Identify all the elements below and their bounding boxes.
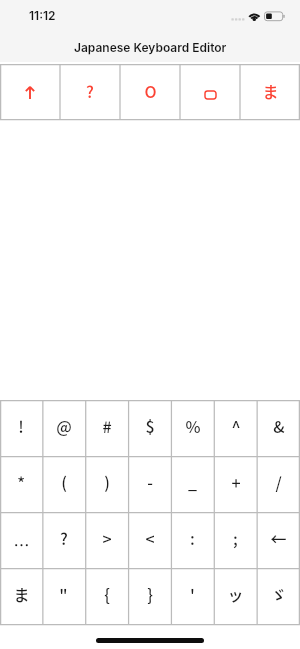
- staticText: ^: [231, 414, 241, 437]
- button[interactable]: +: [214, 456, 257, 512]
- staticText: ま: [262, 79, 279, 102]
- button[interactable]: ": [42, 568, 85, 624]
- staticText: %: [185, 414, 201, 437]
- staticText: ?: [86, 79, 94, 102]
- staticText: }: [147, 582, 153, 605]
- staticText: *: [17, 470, 25, 493]
- staticText: 11:12: [29, 8, 56, 23]
- staticText: ま: [13, 582, 30, 605]
- other: Home indicator: [96, 638, 204, 643]
- staticText: /: [275, 470, 282, 493]
- button[interactable]: :: [171, 512, 214, 568]
- staticText: $: [145, 414, 155, 437]
- button[interactable]: ?: [42, 512, 85, 568]
- button[interactable]: ←: [257, 512, 300, 568]
- staticText: …: [13, 532, 30, 555]
- button[interactable]: ): [85, 456, 128, 512]
- button[interactable]: &: [257, 400, 300, 456]
- staticText: ←: [270, 526, 287, 549]
- staticText: Japanese Keyboard Editor: [74, 40, 227, 55]
- staticText: ": [59, 582, 68, 605]
- staticText: ;: [233, 526, 238, 549]
- staticText: !: [18, 414, 24, 437]
- staticText: -: [147, 470, 153, 493]
- staticText: :: [190, 526, 195, 549]
- button[interactable]: ;: [214, 512, 257, 568]
- button[interactable]: /: [257, 456, 300, 512]
- button[interactable]: $: [128, 400, 171, 456]
- staticText: ッ: [227, 582, 244, 605]
- button[interactable]: !: [0, 400, 42, 456]
- staticText: #: [102, 414, 112, 437]
- staticText: @: [56, 414, 72, 437]
- staticText: +: [231, 470, 241, 493]
- button[interactable]: -: [128, 456, 171, 512]
- staticText: (: [61, 470, 67, 493]
- button[interactable]: _: [171, 456, 214, 512]
- button[interactable]: #: [85, 400, 128, 456]
- button[interactable]: ': [171, 568, 214, 624]
- staticText: >: [102, 526, 112, 549]
- button[interactable]: …: [0, 512, 42, 568]
- staticText: ): [104, 470, 110, 493]
- staticText: &: [273, 414, 285, 437]
- button[interactable]: (: [42, 456, 85, 512]
- button[interactable]: ^: [214, 400, 257, 456]
- button[interactable]: }: [128, 568, 171, 624]
- button[interactable]: ?: [60, 64, 120, 119]
- button[interactable]: %: [171, 400, 214, 456]
- staticText: O: [144, 79, 157, 102]
- button[interactable]: *: [0, 456, 42, 512]
- button[interactable]: Up: [0, 64, 60, 119]
- button[interactable]: Box: [180, 64, 240, 119]
- button[interactable]: ッ: [214, 568, 257, 624]
- staticText: ?: [60, 526, 68, 549]
- staticText: {: [104, 582, 110, 605]
- button[interactable]: <: [128, 512, 171, 568]
- button[interactable]: >: [85, 512, 128, 568]
- button[interactable]: @: [42, 400, 85, 456]
- button[interactable]: ま: [240, 64, 300, 119]
- staticText: _: [188, 470, 197, 493]
- button[interactable]: ま: [0, 568, 42, 624]
- staticText: ': [190, 582, 195, 605]
- staticText: ゞ: [270, 582, 287, 605]
- button[interactable]: O: [120, 64, 180, 119]
- button[interactable]: ゞ: [257, 568, 300, 624]
- staticText: <: [145, 526, 155, 549]
- button[interactable]: {: [85, 568, 128, 624]
